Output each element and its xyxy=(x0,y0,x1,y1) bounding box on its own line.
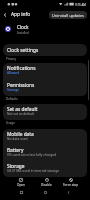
staticText: 0% used since last fully charged xyxy=(7,152,57,156)
staticText: Permissions xyxy=(7,82,35,89)
staticText: Open xyxy=(17,183,25,187)
button[interactable]: Back xyxy=(0,10,9,19)
button[interactable]: Set as default xyxy=(3,104,87,120)
staticText: Notifications xyxy=(7,65,36,72)
staticText: Defaults xyxy=(6,97,18,101)
staticText: Allowed xyxy=(7,70,20,74)
staticText: No data used xyxy=(7,136,28,140)
button[interactable]: Permissions xyxy=(3,80,87,96)
staticText: Mobile data xyxy=(7,131,34,138)
staticText: Storage xyxy=(7,163,25,170)
button[interactable]: Notifications xyxy=(3,63,87,80)
staticText: Set as default xyxy=(7,106,38,113)
staticText: 58.07 MB used in internal storage xyxy=(7,168,60,172)
staticText: Clock settings xyxy=(7,47,39,54)
staticText: Battery xyxy=(7,147,24,154)
button[interactable]: Force stop xyxy=(60,178,82,187)
staticText: Privacy xyxy=(6,57,17,61)
button[interactable]: Battery xyxy=(3,145,87,161)
button[interactable]: Clock settings xyxy=(3,44,87,56)
staticText: Not set as default xyxy=(7,111,35,115)
button[interactable]: Storage xyxy=(3,161,87,177)
button[interactable]: Open xyxy=(8,178,33,187)
staticText: Disable xyxy=(41,183,52,187)
staticText: Usage xyxy=(6,121,15,125)
staticText: Clock xyxy=(17,24,29,30)
staticText: Installed xyxy=(17,31,29,35)
button[interactable]: Mobile data xyxy=(3,129,87,145)
button[interactable]: Home xyxy=(41,188,50,197)
button[interactable]: Uninstall updates xyxy=(49,11,87,19)
button[interactable]: Back xyxy=(64,188,73,197)
staticText: 9:15 AM xyxy=(75,3,86,7)
staticText: Storage xyxy=(7,87,20,91)
button[interactable]: Recents xyxy=(17,188,26,197)
staticText: App info xyxy=(11,11,31,18)
staticText: Force stop xyxy=(63,183,79,187)
button[interactable]: Disable xyxy=(33,178,60,187)
staticText: Uninstall updates xyxy=(52,13,84,18)
